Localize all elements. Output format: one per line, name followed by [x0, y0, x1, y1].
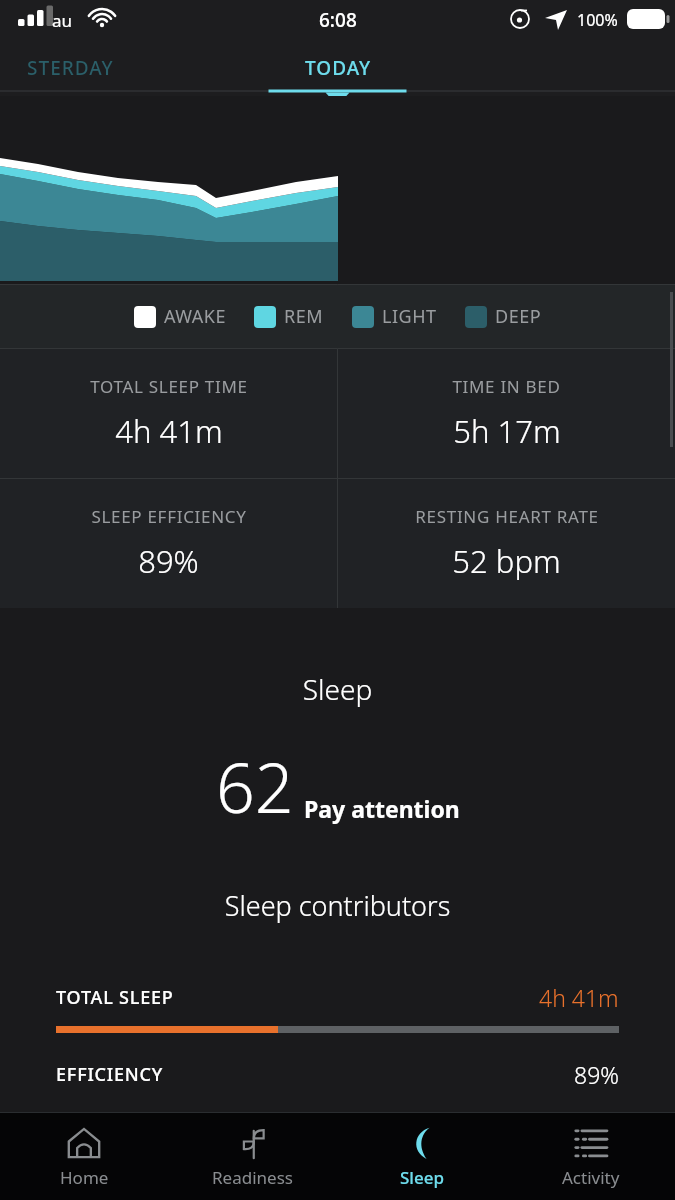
staticText: DEEP	[495, 304, 542, 329]
staticText: STERDAY	[27, 55, 114, 81]
staticText: Sleep	[0, 670, 675, 708]
button[interactable]: TOTAL SLEEP	[0, 982, 675, 1033]
staticText: SLEEP EFFICIENCY	[91, 505, 247, 528]
staticText: Sleep contributors	[0, 887, 675, 924]
staticText: RESTING HEART RATE	[415, 505, 599, 528]
button[interactable]: Home	[0, 1113, 168, 1200]
button[interactable]: TODAY	[238, 40, 438, 96]
staticText: 89%	[574, 1059, 619, 1090]
staticText: 4h 41m	[539, 982, 619, 1013]
staticText: 100%	[577, 9, 618, 31]
button[interactable]: RESTING HEART RATE	[338, 479, 675, 608]
staticText: 62	[216, 740, 294, 833]
button[interactable]: TOTAL SLEEP TIME	[0, 349, 337, 478]
staticText: au	[52, 9, 73, 32]
staticText: Pay attention	[304, 793, 460, 824]
staticText: TOTAL SLEEP TIME	[90, 375, 248, 398]
staticText: 89%	[138, 540, 199, 582]
staticText: TIME IN BED	[452, 375, 561, 398]
button[interactable]: STERDAY	[0, 40, 140, 96]
staticText: Readiness	[212, 1166, 293, 1189]
staticText: 5h 17m	[453, 410, 561, 452]
staticText: 4h 41m	[115, 410, 223, 452]
button[interactable]: Sleep	[337, 1113, 506, 1200]
staticText: EFFICIENCY	[56, 1062, 164, 1087]
button[interactable]: Readiness	[168, 1113, 337, 1200]
staticText: AWAKE	[164, 304, 226, 329]
staticText: Home	[60, 1166, 109, 1189]
staticText: 52 bpm	[452, 540, 561, 582]
staticText: 6:08	[319, 7, 357, 33]
button[interactable]: Activity	[506, 1113, 675, 1200]
staticText: Activity	[562, 1166, 620, 1189]
staticText: TOTAL SLEEP	[56, 985, 174, 1010]
button[interactable]: SLEEP EFFICIENCY	[0, 479, 337, 608]
staticText: REM	[284, 304, 324, 329]
staticText: TODAY	[305, 55, 372, 81]
staticText: Sleep	[400, 1166, 444, 1189]
button[interactable]: EFFICIENCY	[56, 1059, 619, 1090]
button[interactable]: TIME IN BED	[338, 349, 675, 478]
staticText: LIGHT	[382, 304, 437, 329]
